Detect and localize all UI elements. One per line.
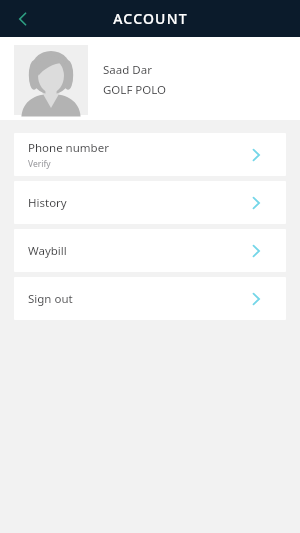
staticText: Sign out	[28, 291, 73, 307]
button[interactable]: Phone number	[14, 133, 286, 176]
button[interactable]: Waybill	[14, 229, 286, 272]
staticText: History	[28, 195, 67, 211]
staticText: ACCOUNT	[113, 9, 188, 28]
staticText: Saad Dar	[103, 62, 152, 78]
button[interactable]: Sign out	[14, 277, 286, 320]
button[interactable]: Back	[8, 4, 38, 34]
staticText: Waybill	[28, 243, 67, 259]
button[interactable]: History	[14, 181, 286, 224]
staticText: Phone number	[28, 140, 109, 156]
staticText: Verify	[28, 158, 51, 170]
staticText: GOLF POLO	[103, 82, 167, 98]
